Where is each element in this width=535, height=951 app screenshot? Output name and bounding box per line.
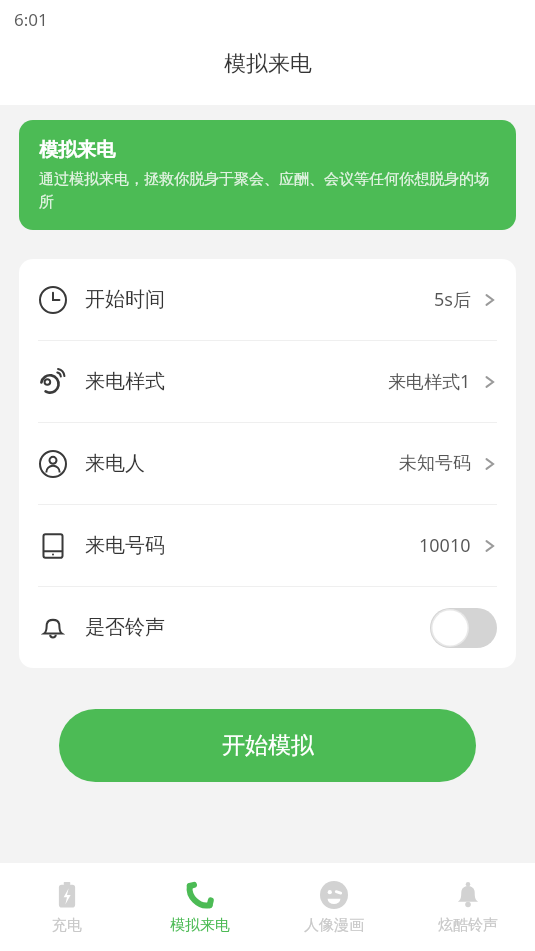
staticText: 充电 [52, 916, 82, 935]
button[interactable]: 模拟来电 [133, 863, 267, 951]
staticText: 6:01 [14, 8, 48, 31]
staticText: 来电号码 [85, 533, 165, 558]
staticText: 来电人 [85, 451, 145, 476]
staticText: 通过模拟来电，拯救你脱身于聚会、应酬、会议等任何你想脱身的场所 [39, 170, 496, 212]
button[interactable]: 开始模拟 [59, 709, 476, 782]
button[interactable]: 来电人 [19, 423, 516, 504]
staticText: 模拟来电 [39, 138, 115, 162]
staticText: 是否铃声 [85, 615, 165, 640]
button[interactable]: 是否铃声开关 [430, 608, 497, 648]
staticText: 模拟来电 [170, 916, 230, 935]
button[interactable]: 开始时间 [19, 259, 516, 340]
button[interactable]: 人像漫画 [267, 863, 401, 951]
button[interactable]: 是否铃声 [19, 587, 516, 668]
staticText: 人像漫画 [304, 916, 364, 935]
button[interactable]: 来电样式 [19, 341, 516, 422]
staticText: 模拟来电 [224, 50, 312, 78]
staticText: 未知号码 [399, 452, 471, 475]
button[interactable]: 模拟来电 [19, 120, 516, 230]
staticText: 10010 [419, 533, 471, 558]
staticText: 开始时间 [85, 287, 165, 312]
staticText: 炫酷铃声 [438, 916, 498, 935]
staticText: 来电样式 [85, 369, 165, 394]
button[interactable]: 来电号码 [19, 505, 516, 586]
staticText: 来电样式1 [388, 369, 471, 394]
button[interactable]: 炫酷铃声 [401, 863, 535, 951]
staticText: 开始模拟 [222, 731, 314, 760]
staticText: 5s后 [434, 287, 471, 312]
button[interactable]: 充电 [0, 863, 133, 951]
